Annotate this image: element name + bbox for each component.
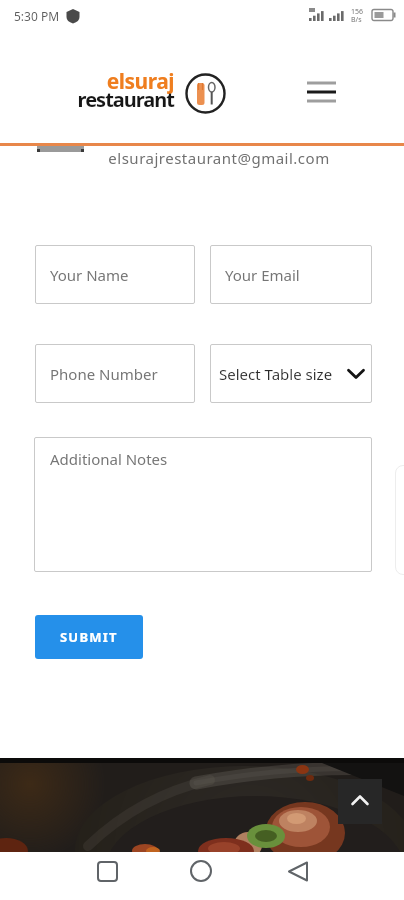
button[interactable] [338,779,382,824]
button[interactable] [185,856,217,888]
button[interactable]: SUBMIT [35,615,143,659]
staticText: restaurant [0,86,174,113]
staticText: SUBMIT [60,628,118,646]
staticText: elsuraj [0,67,174,96]
button[interactable] [282,856,314,888]
staticText: 5:30 PM [14,8,60,24]
button[interactable]: Select Table size [210,344,372,403]
staticText: Additional Notes [50,449,168,469]
button[interactable]: Your Name [35,245,195,304]
staticText: Phone Number [50,364,158,384]
button[interactable] [92,856,124,888]
staticText: Select Table size [219,364,333,384]
button[interactable] [300,75,344,111]
button[interactable]: Phone Number [35,344,195,403]
button[interactable]: Additional Notes [34,437,372,572]
button[interactable]: Your Email [210,245,372,304]
staticText: 156 B/s [351,7,364,24]
staticText: elsurajrestaurant@gmail.com [17,148,404,168]
staticText: Your Email [225,265,300,285]
staticText: Your Name [50,265,129,285]
